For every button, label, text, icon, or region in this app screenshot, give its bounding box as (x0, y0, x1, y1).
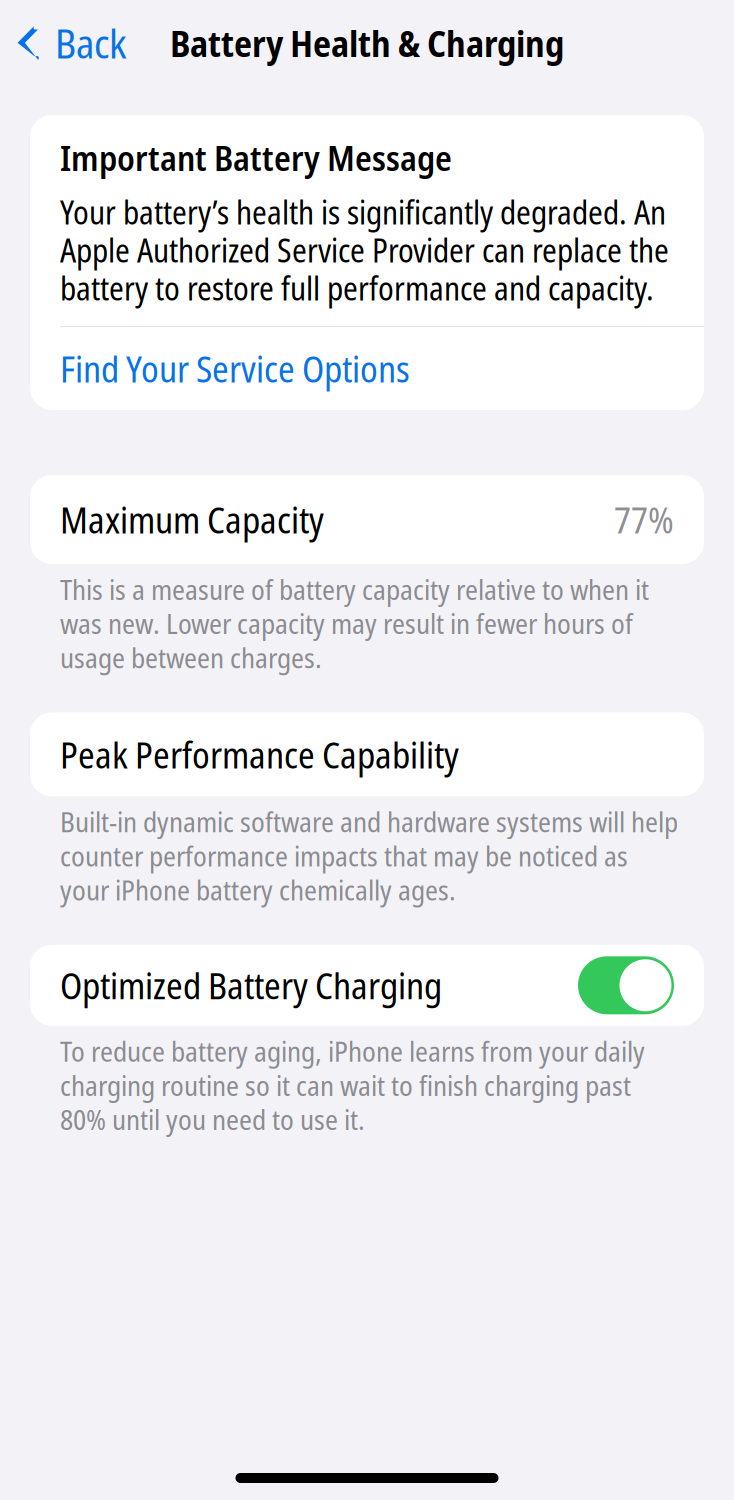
staticText: Optimized Battery Charging (60, 961, 442, 1010)
staticText: Your battery’s health is significantly d… (60, 190, 669, 310)
staticText: Built-in dynamic software and hardware s… (60, 802, 678, 909)
staticText: To reduce battery aging, iPhone learns f… (60, 1032, 645, 1138)
staticText: Battery Health & Charging (170, 18, 564, 67)
staticText: Back (55, 16, 127, 70)
staticText: This is a measure of battery capacity re… (60, 570, 649, 676)
button[interactable]: Back (0, 0, 137, 86)
staticText: Peak Performance Capability (60, 730, 459, 779)
staticText: 77% (614, 495, 674, 544)
staticText: Find Your Service Options (60, 344, 410, 393)
staticText: Maximum Capacity (60, 495, 324, 544)
button[interactable]: Find Your Service Options (30, 327, 704, 410)
staticText: Important Battery Message (60, 134, 452, 181)
button[interactable]: Optimized Battery Charging (0, 945, 734, 1026)
